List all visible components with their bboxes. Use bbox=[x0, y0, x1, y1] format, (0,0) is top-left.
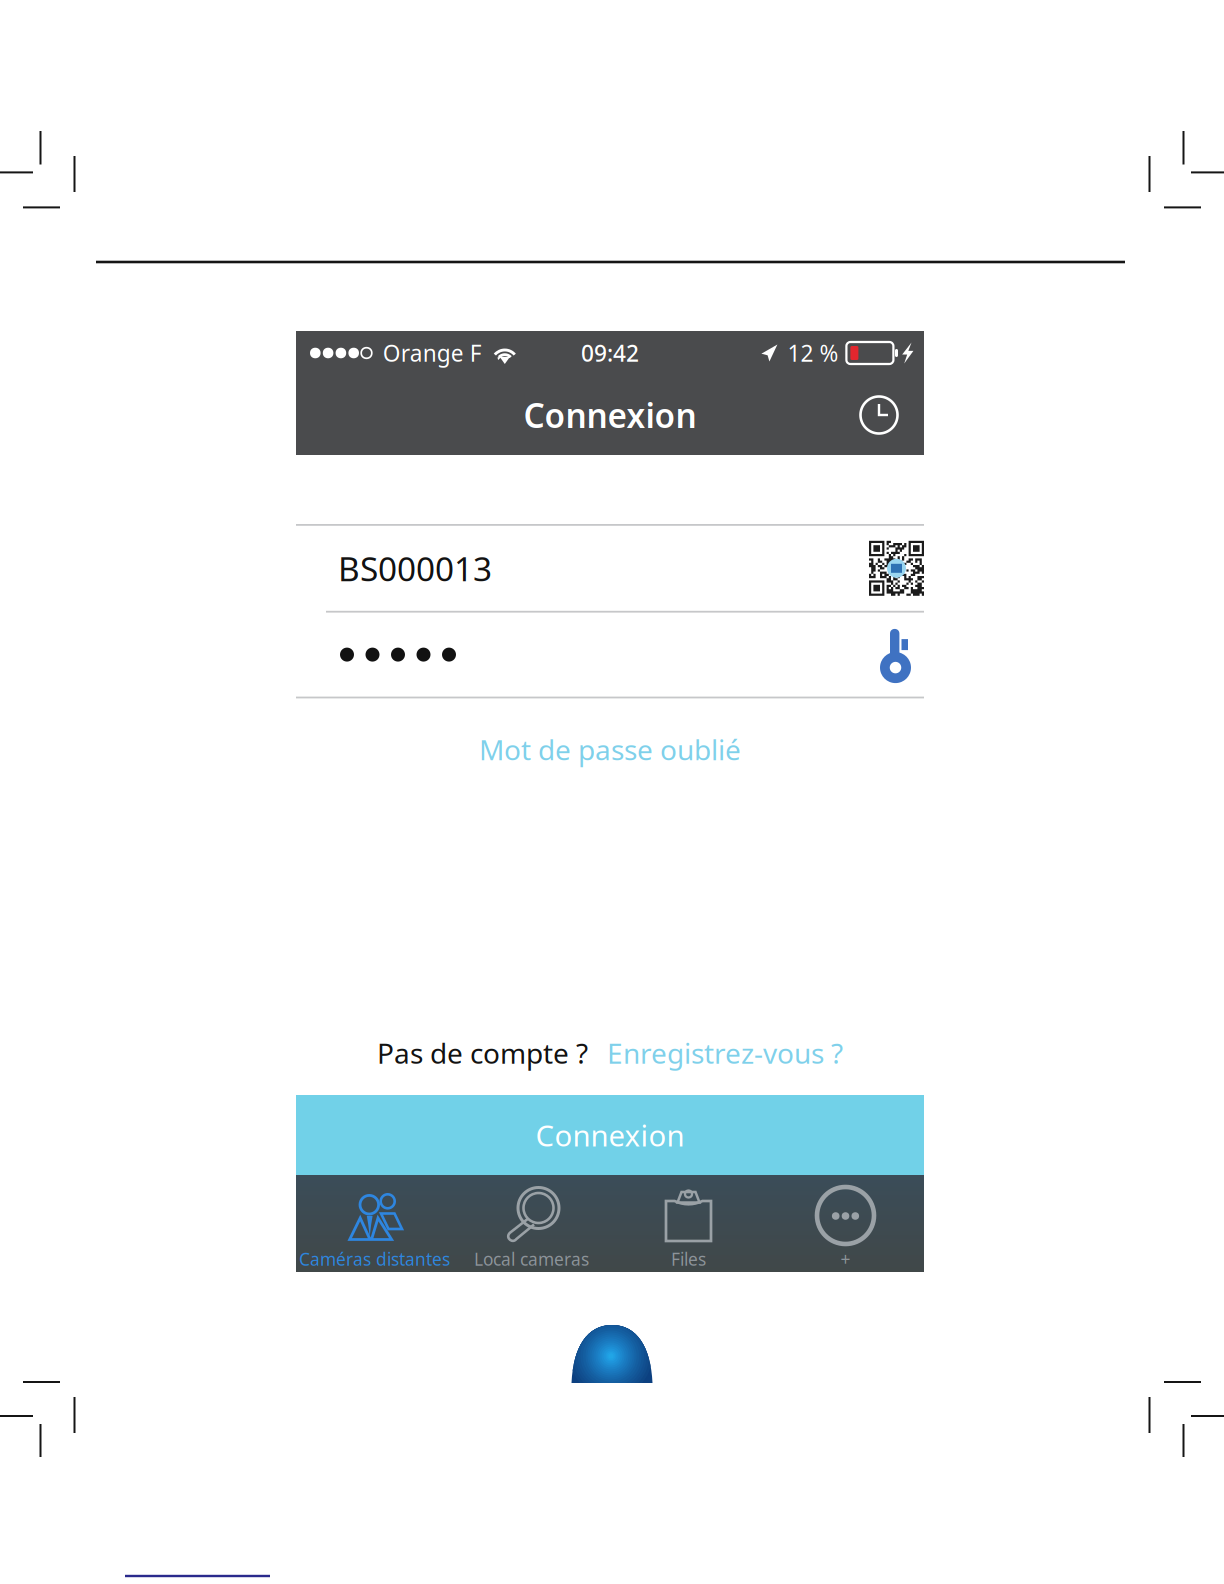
button[interactable]: Local cameras bbox=[453, 1175, 610, 1272]
staticText: + bbox=[840, 1247, 850, 1270]
staticText: 12 % bbox=[787, 338, 838, 368]
staticText: Files bbox=[671, 1247, 706, 1270]
button[interactable]: Files bbox=[610, 1175, 767, 1272]
staticText: Enregistrez-vous ? bbox=[607, 1034, 843, 1072]
button[interactable]: Enregistrez-vous ? bbox=[588, 1024, 843, 1082]
staticText: Orange F bbox=[383, 338, 482, 368]
button[interactable]: Mot de passe oublié bbox=[296, 698, 924, 800]
staticText: Connexion bbox=[535, 1115, 684, 1154]
staticText: Caméras distantes bbox=[299, 1247, 450, 1270]
staticText: BS000013 bbox=[338, 546, 492, 590]
staticText: Local cameras bbox=[474, 1247, 589, 1270]
button[interactable]: Recent connections bbox=[847, 383, 911, 447]
button[interactable]: Caméras distantes bbox=[296, 1175, 453, 1272]
button[interactable]: Connexion bbox=[296, 1095, 924, 1175]
staticText: 09:42 bbox=[581, 338, 639, 368]
staticText: Connexion bbox=[523, 393, 696, 437]
button[interactable]: + bbox=[767, 1175, 924, 1272]
staticText: Pas de compte ? bbox=[377, 1034, 588, 1072]
button[interactable]: Show password bbox=[880, 626, 924, 684]
button[interactable]: Scan QR code bbox=[869, 541, 924, 596]
staticText: Mot de passe oublié bbox=[479, 731, 741, 768]
